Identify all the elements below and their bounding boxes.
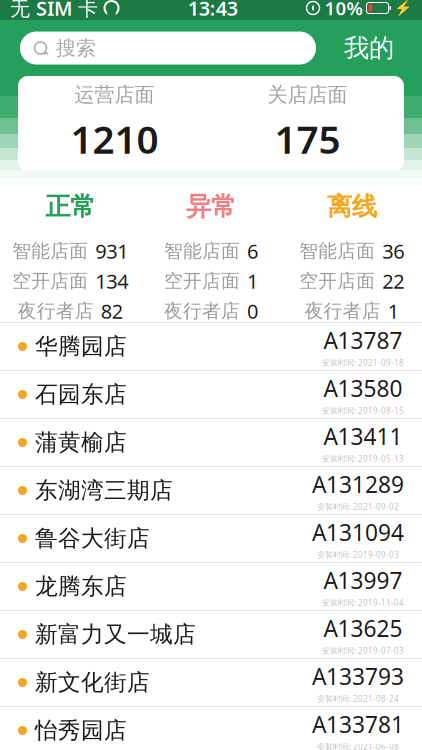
staticText: 安装时间: 2021-08-24 [317, 693, 399, 704]
staticText: 1 [388, 298, 399, 324]
staticText: A13997 [323, 565, 402, 595]
staticText: 175 [274, 113, 340, 164]
staticText: 夜行者店 [164, 300, 240, 322]
staticText: 安装时间: 2019-11-04 [322, 597, 404, 608]
staticText: 搜索 [56, 36, 96, 60]
button[interactable]: 新富力又一城店 [0, 611, 422, 658]
staticText: 安装时间: 2021-09-02 [317, 501, 399, 512]
button[interactable]: 东湖湾三期店 [0, 467, 422, 514]
staticText: ⚡ [394, 0, 412, 16]
staticText: 异常 [186, 191, 236, 222]
staticText: 空开店面 [12, 270, 88, 292]
staticText: 夜行者店 [305, 300, 381, 322]
staticText: 华腾园店 [35, 333, 127, 360]
staticText: 10% [324, 0, 362, 20]
staticText: A131289 [312, 469, 404, 499]
button[interactable]: 怡秀园店 [0, 707, 422, 750]
staticText: 离线 [327, 191, 377, 222]
staticText: 我的 [344, 32, 394, 63]
staticText: 0 [247, 298, 258, 324]
staticText: 智能店面 [164, 240, 240, 262]
staticText: 13:43 [188, 0, 238, 21]
staticText: 蒲黄榆店 [35, 429, 127, 456]
staticText: A133793 [312, 661, 404, 691]
staticText: 134 [95, 268, 128, 294]
staticText: A13580 [323, 373, 402, 403]
staticText: 安装时间: 2021-06-08 [317, 741, 399, 750]
staticText: 无 SIM 卡 [10, 0, 98, 21]
staticText: 安装时间: 2019-08-15 [322, 405, 404, 416]
staticText: 关店店面 [267, 82, 347, 107]
button[interactable]: 石园东店 [0, 371, 422, 418]
staticText: 空开店面 [299, 270, 375, 292]
staticText: 安装时间: 2019-05-13 [322, 453, 404, 464]
button[interactable]: 我的 [338, 26, 400, 69]
staticText: A13625 [323, 613, 402, 643]
staticText: A131094 [312, 517, 404, 547]
staticText: 安装时间: 2019-07-03 [322, 645, 404, 656]
button[interactable]: 鲁谷大街店 [0, 515, 422, 562]
staticText: 运营店面 [74, 82, 154, 107]
staticText: 空开店面 [164, 270, 240, 292]
staticText: 82 [101, 298, 123, 324]
button[interactable]: 龙腾东店 [0, 563, 422, 610]
staticText: 1210 [70, 113, 158, 164]
staticText: 龙腾东店 [35, 573, 127, 600]
staticText: A13787 [323, 325, 402, 355]
staticText: 安装时间: 2019-09-03 [317, 549, 399, 560]
staticText: 智能店面 [299, 240, 375, 262]
staticText: 22 [382, 268, 404, 294]
staticText: 智能店面 [12, 240, 88, 262]
button[interactable]: 新文化街店 [0, 659, 422, 706]
staticText: 6 [247, 238, 258, 264]
staticText: 931 [95, 238, 128, 264]
staticText: A13411 [323, 421, 402, 451]
button[interactable]: 搜索 [20, 31, 316, 64]
staticText: 夜行者店 [18, 300, 94, 322]
staticText: 新文化街店 [35, 669, 150, 696]
staticText: 东湖湾三期店 [35, 477, 173, 504]
staticText: 1 [247, 268, 258, 294]
staticText: 鲁谷大街店 [35, 525, 150, 552]
staticText: 正常 [45, 191, 95, 222]
staticText: 安装时间: 2021-09-18 [322, 357, 404, 368]
button[interactable]: 蒲黄榆店 [0, 419, 422, 466]
staticText: A133781 [312, 709, 404, 739]
staticText: 石园东店 [35, 381, 127, 408]
staticText: 怡秀园店 [35, 717, 127, 744]
staticText: 36 [382, 238, 404, 264]
button[interactable]: 华腾园店 [0, 323, 422, 370]
staticText: 新富力又一城店 [35, 621, 196, 648]
